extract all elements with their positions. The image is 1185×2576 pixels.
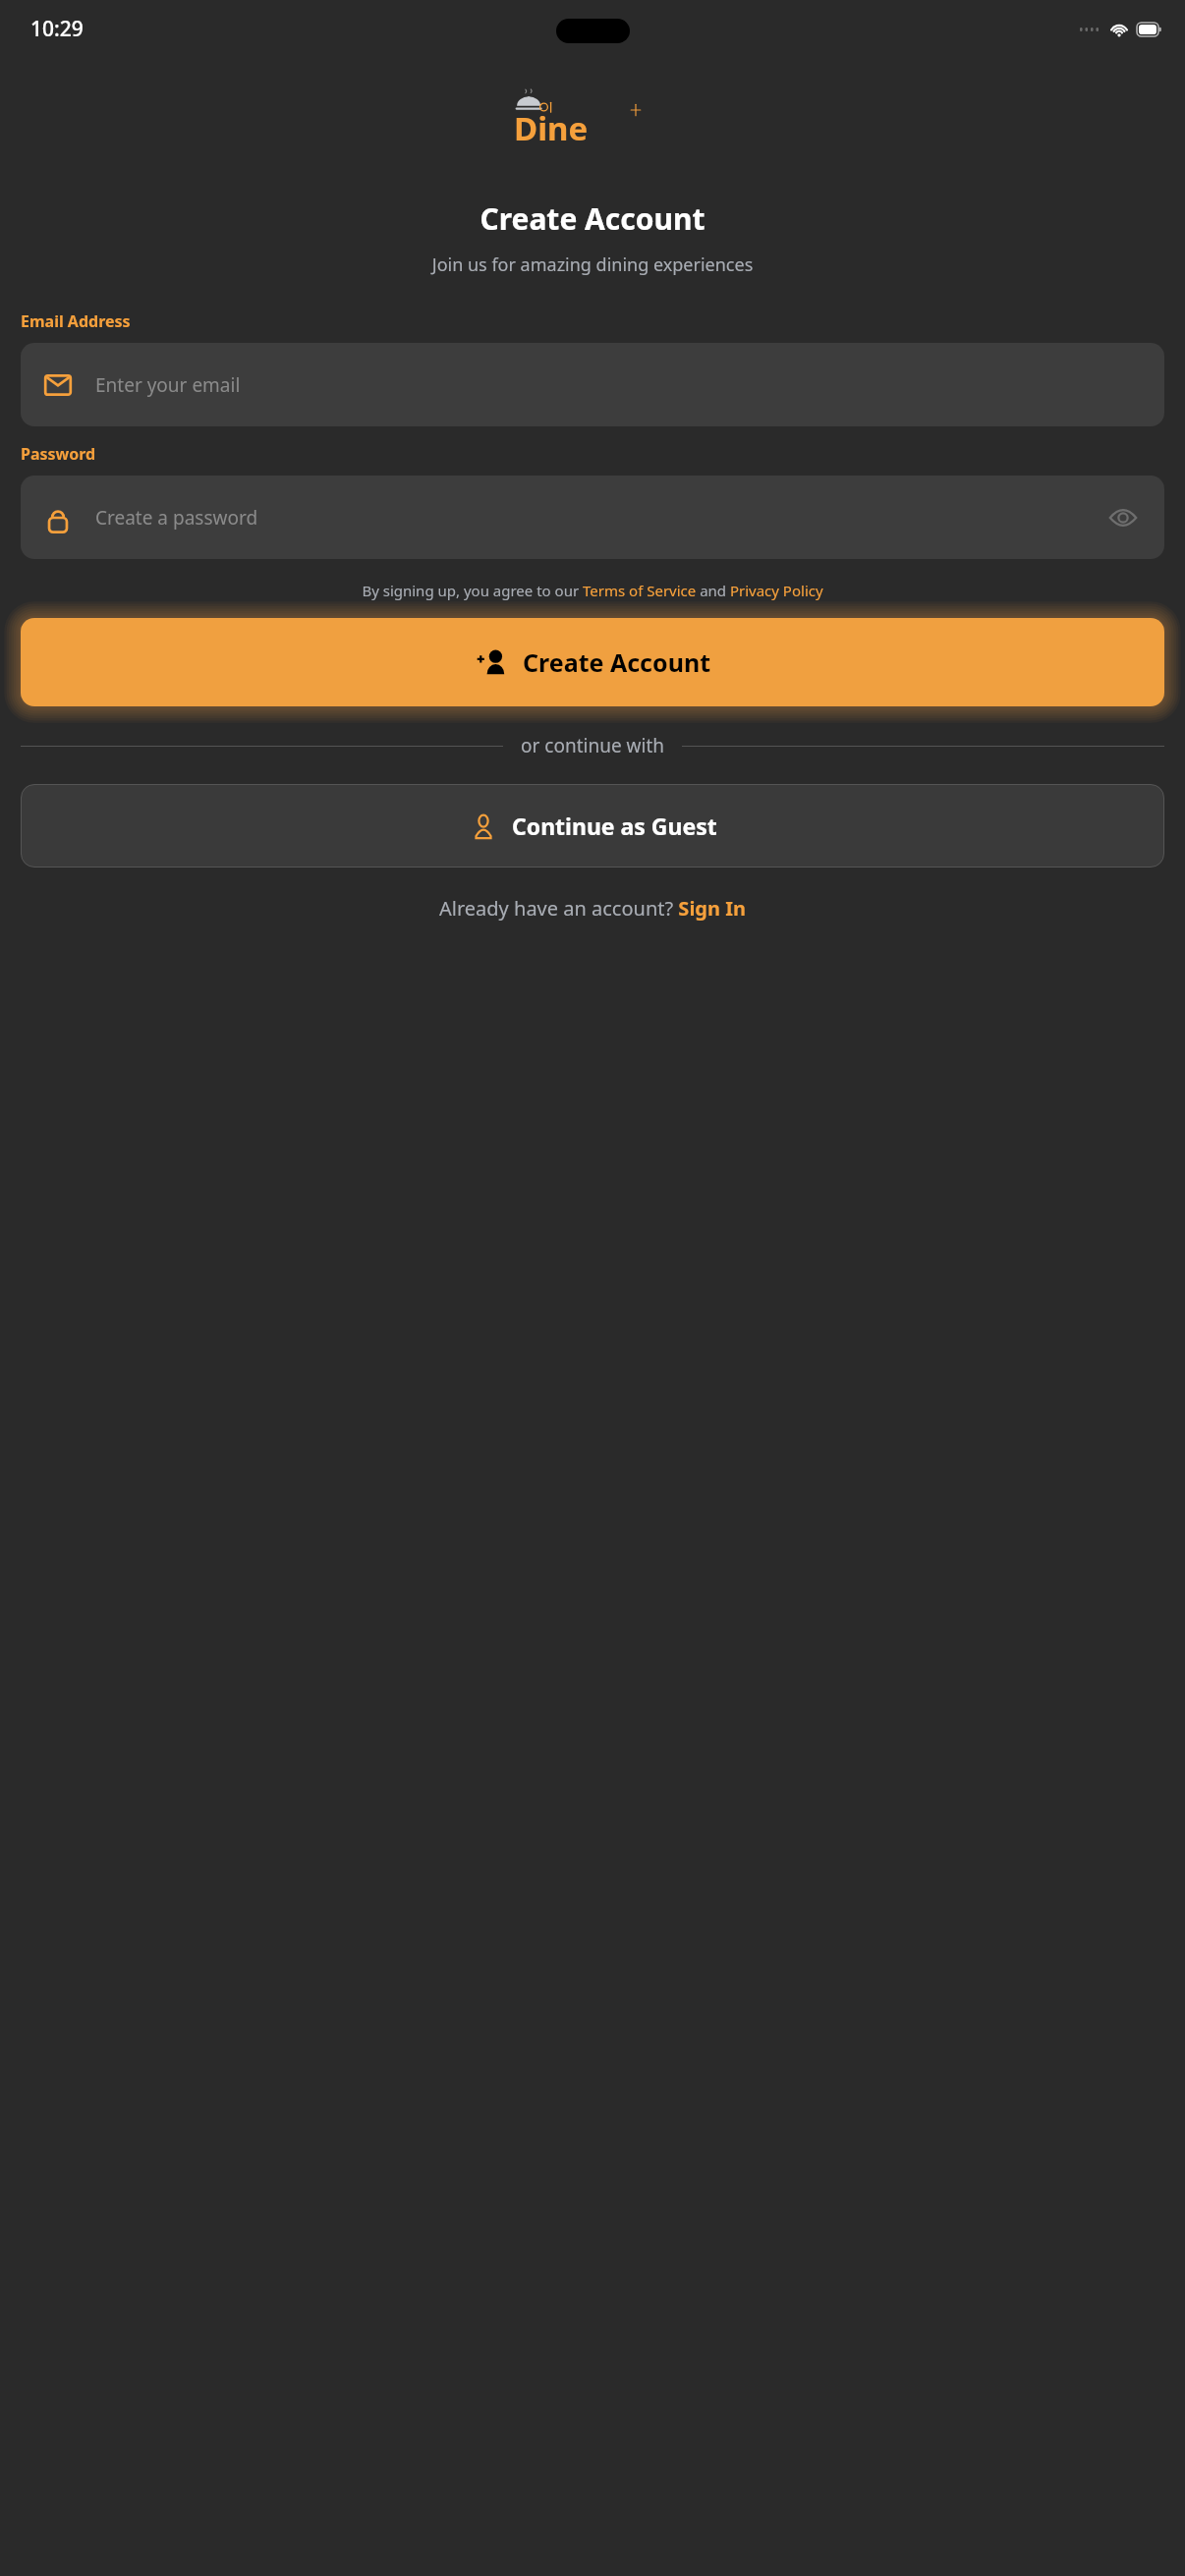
button[interactable]: Create a password [21,476,1164,559]
button[interactable]: Already have an account? Sign In [21,895,1164,922]
staticText: 10:29 [30,15,84,43]
staticText: Dine [514,106,589,150]
staticText: Enter your email [95,372,1143,398]
staticText: By signing up, you agree to our Terms of… [362,581,823,600]
staticText: Create Account [523,645,710,679]
button[interactable]: Show password [1103,498,1143,537]
staticText: Join us for amazing dining experiences [0,252,1185,277]
staticText: Already have an account? Sign In [439,895,746,922]
staticText: Create a password [95,505,1103,531]
button[interactable]: Create Account [21,618,1164,706]
button[interactable]: Enter your email [21,343,1164,426]
staticText: or continue with [521,733,664,758]
staticText: Password [21,443,96,465]
staticText: Email Address [21,310,131,332]
staticText: Time [592,106,671,150]
button[interactable]: By signing up, you agree to our Terms of… [21,581,1164,600]
button[interactable]: Continue as Guest [21,784,1164,868]
staticText: Create Account [0,198,1185,239]
staticText: Continue as Guest [512,811,717,841]
